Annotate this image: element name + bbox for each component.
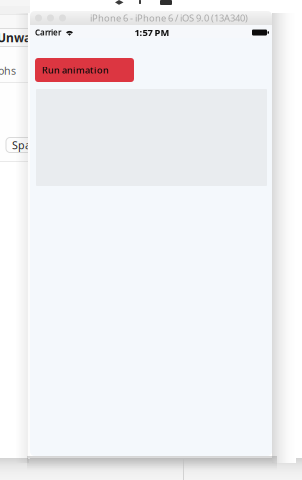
staticText: Unwatch bbox=[0, 29, 50, 45]
staticText: Carrier bbox=[35, 27, 61, 38]
staticText: 1:57 PM bbox=[134, 26, 169, 39]
button[interactable]: Run animation bbox=[35, 58, 134, 82]
staticText: ohs bbox=[0, 63, 16, 78]
staticText: Space bbox=[12, 138, 42, 152]
staticText: iPhone 6 - iPhone 6 / iOS 9.0 (13A340) bbox=[90, 12, 248, 24]
staticText: Run animation bbox=[42, 64, 109, 76]
